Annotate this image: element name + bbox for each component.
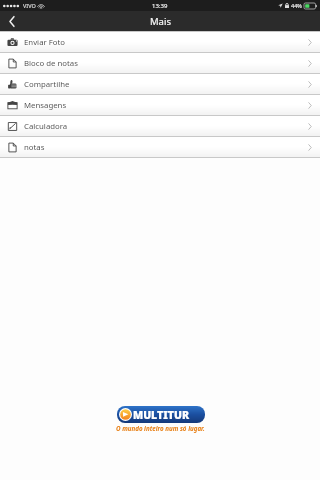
button[interactable]: Compartilhe: [0, 74, 320, 94]
button[interactable]: Enviar Foto: [0, 32, 320, 52]
button[interactable]: Bloco de notas: [0, 53, 320, 73]
staticText: VIVO: [23, 2, 36, 9]
staticText: O mundo inteiro num só lugar.: [116, 424, 205, 432]
staticText: Mais: [150, 15, 171, 28]
staticText: Bloco de notas: [24, 58, 78, 69]
staticText: Calculadora: [24, 121, 68, 132]
button[interactable]: notas: [0, 137, 320, 157]
staticText: notas: [24, 142, 45, 153]
staticText: Compartilhe: [24, 79, 70, 90]
staticText: 44%: [291, 2, 302, 9]
staticText: 13:39: [152, 2, 168, 10]
button[interactable]: Back: [0, 11, 24, 31]
staticText: Mensagens: [24, 100, 67, 111]
staticText: MULTITUR: [133, 408, 190, 422]
button[interactable]: Calculadora: [0, 116, 320, 136]
button[interactable]: Mensagens: [0, 95, 320, 115]
staticText: Enviar Foto: [24, 37, 66, 48]
